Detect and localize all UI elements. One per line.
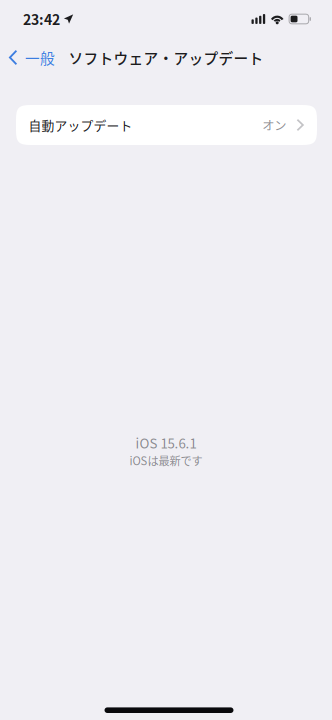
staticText: 23:42 xyxy=(23,9,60,29)
staticText: ソフトウェア・アップデート xyxy=(68,47,263,68)
button[interactable]: 自動アップデート xyxy=(16,105,317,145)
staticText: オン xyxy=(262,116,286,134)
staticText: iOS 15.6.1 xyxy=(135,433,196,452)
button[interactable]: 一般に戻る xyxy=(0,42,63,72)
staticText: 自動アップデート xyxy=(28,116,132,134)
staticText: 一般 xyxy=(25,47,55,68)
staticText: iOSは最新です xyxy=(129,452,202,468)
